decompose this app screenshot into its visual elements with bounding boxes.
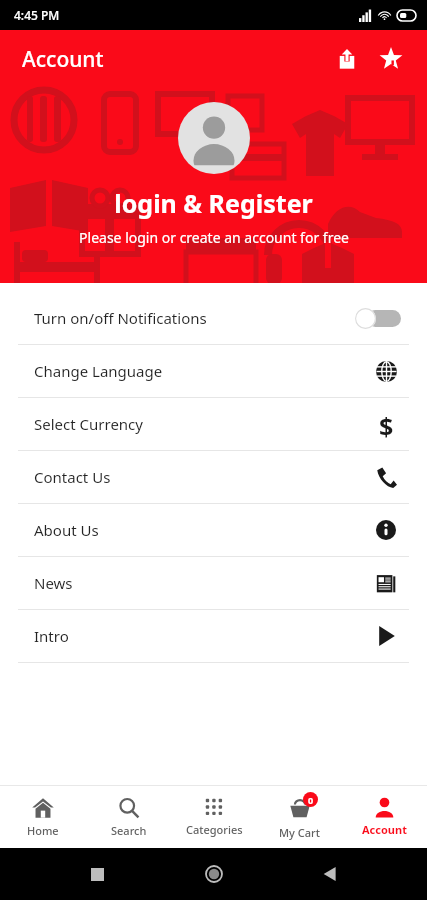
staticText: Please login or create an account for fr…	[79, 228, 349, 247]
staticText: Turn on/off Notifications	[34, 308, 355, 328]
staticText: Intro	[34, 626, 371, 646]
staticText: Categories	[186, 822, 243, 837]
button[interactable]: News	[0, 557, 427, 609]
button[interactable]: Select Currency	[0, 398, 427, 450]
button[interactable]: Search	[86, 786, 172, 848]
staticText: Account	[362, 822, 407, 837]
staticText: News	[34, 573, 371, 593]
button[interactable]: Profile avatar	[178, 102, 250, 174]
button[interactable]: Intro	[0, 610, 427, 662]
button[interactable]: Home	[0, 786, 86, 848]
button[interactable]: Account	[342, 786, 427, 848]
staticText: 4:45 PM	[14, 7, 60, 23]
button[interactable]: Select currency	[371, 409, 401, 439]
button[interactable]: Contact Us	[0, 451, 427, 503]
staticText: Account	[22, 45, 104, 74]
staticText: Home	[27, 823, 59, 838]
staticText: My Cart	[279, 825, 320, 840]
button[interactable]: About us	[371, 515, 401, 545]
staticText: $	[379, 409, 394, 439]
staticText: Select Currency	[34, 414, 371, 434]
staticText: Search	[111, 823, 147, 838]
button[interactable]: 0	[257, 786, 342, 848]
button[interactable]: Change language	[371, 356, 401, 386]
button[interactable]: Back	[310, 854, 350, 894]
button[interactable]: News	[371, 568, 401, 598]
staticText: 0	[308, 794, 314, 806]
button[interactable]: Intro	[371, 621, 401, 651]
staticText: Contact Us	[34, 467, 371, 487]
staticText: About Us	[34, 520, 371, 540]
staticText: Change Language	[34, 361, 371, 381]
button[interactable]: Home	[194, 854, 234, 894]
button[interactable]: Toggle notifications	[355, 305, 401, 331]
button[interactable]: Recent apps	[77, 854, 117, 894]
button[interactable]: Contact us	[371, 462, 401, 492]
button[interactable]: Turn on/off Notifications	[0, 292, 427, 344]
button[interactable]: Categories	[172, 786, 257, 848]
button[interactable]: Share	[325, 37, 369, 81]
staticText: login & Register	[114, 186, 313, 220]
button[interactable]: Favorite	[369, 37, 413, 81]
button[interactable]: Change Language	[0, 345, 427, 397]
button[interactable]: About Us	[0, 504, 427, 556]
